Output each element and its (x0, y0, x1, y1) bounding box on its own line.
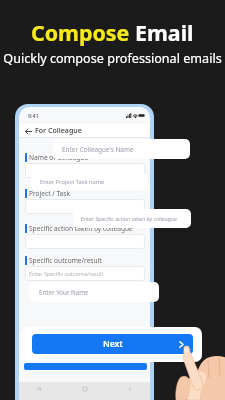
button[interactable]: Enter Specific action taken by colleague (73, 209, 191, 228)
staticText: Project / Task (29, 189, 70, 198)
button[interactable] (25, 163, 145, 178)
staticText: Enter Specific outcome/result (29, 270, 104, 277)
staticText: Enter Project Task name (40, 178, 105, 186)
button[interactable]: Enter Your Name (29, 282, 159, 302)
button[interactable]: Home (81, 385, 89, 393)
button[interactable]: Enter Colleague's Name (53, 139, 190, 159)
button[interactable] (25, 199, 145, 214)
button[interactable]: Back (22, 125, 34, 137)
staticText: For Colleague (35, 126, 82, 136)
button[interactable]: Enter Project Task name (31, 173, 148, 190)
staticText: Specific outcome/result (29, 256, 102, 265)
staticText: Compose (31, 18, 135, 47)
button[interactable]: Next (32, 334, 193, 354)
staticText: Quickly compose professional emails (0, 50, 225, 67)
staticText: 9:41 (28, 112, 39, 119)
button[interactable]: Recents (35, 385, 43, 393)
staticText: Enter Your Name (39, 288, 89, 296)
staticText: Specific action taken by colleague (29, 224, 133, 233)
button[interactable]: Enter Specific outcome/result (25, 266, 145, 281)
button[interactable]: Back (126, 385, 134, 393)
staticText: Email (135, 18, 194, 47)
staticText: Next (103, 338, 123, 350)
staticText: Enter Colleague's Name (62, 145, 134, 154)
staticText: Enter Specific action taken by colleague (81, 215, 178, 222)
button[interactable] (25, 234, 145, 249)
staticText: Name of Colleague (29, 153, 89, 162)
